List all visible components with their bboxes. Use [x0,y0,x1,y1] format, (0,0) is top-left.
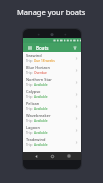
staticText: Available [34,95,48,99]
staticText: Calypso [26,89,41,94]
button[interactable]: Seawind [23,52,81,64]
button[interactable]: Calypso [23,88,81,100]
button[interactable]: Northern Star [23,76,81,88]
staticText: Available [34,131,48,135]
staticText: Available [34,83,48,87]
staticText: Seawind [26,53,42,58]
staticText: Blue Horizon [26,65,50,70]
staticText: Trip: [26,107,33,111]
staticText: Available [34,119,48,123]
staticText: Overdue [34,71,47,75]
button[interactable]: Back [32,152,40,160]
button[interactable]: Pelican [23,100,81,112]
staticText: Available [34,143,48,147]
staticText: Tradewind [26,137,46,142]
button[interactable]: More options [71,44,78,51]
staticText: Trip: [26,131,33,135]
staticText: Trip: [26,143,33,147]
button[interactable]: Lagoon [23,124,81,136]
staticText: Pelican [26,101,40,106]
staticText: Trip: [26,71,33,75]
staticText: Wavebreaker [26,113,51,118]
staticText: Lagoon [26,125,40,130]
button[interactable]: Recent apps [65,152,73,160]
button[interactable]: Open navigation menu [26,44,33,51]
button[interactable]: Tradewind [23,136,81,148]
staticText: Due 18 weeks [34,59,55,63]
staticText: Trip: [26,119,33,123]
button[interactable]: Wavebreaker [23,112,81,124]
staticText: Boats [36,45,49,51]
staticText: Trip: [26,59,33,63]
staticText: Manage your boats [17,7,86,17]
staticText: Northern Star [26,77,52,82]
button[interactable]: Home [48,152,56,160]
staticText: Trip: [26,95,33,99]
button[interactable]: Blue Horizon [23,64,81,76]
staticText: Available [34,107,48,111]
staticText: Trip: [26,83,33,87]
